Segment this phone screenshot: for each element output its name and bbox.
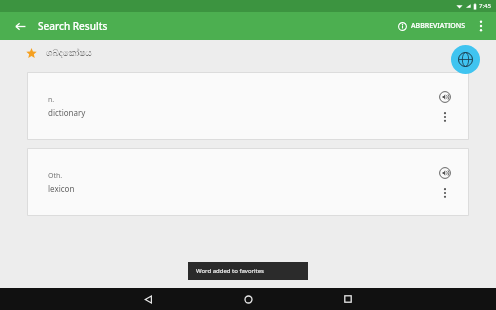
button[interactable]: Home [226, 288, 270, 310]
button[interactable]: Back [10, 16, 30, 36]
button[interactable]: More options [472, 17, 490, 35]
staticText: lexicon [48, 183, 75, 194]
button[interactable]: n. [28, 73, 468, 139]
staticText: ABBREVIATIONS [411, 21, 466, 31]
staticText: n. [48, 95, 55, 105]
staticText: dictionary [48, 107, 86, 118]
button[interactable]: More options [437, 109, 453, 125]
button[interactable]: Oth. [28, 149, 468, 215]
button[interactable]: Pronounce [436, 88, 454, 106]
staticText: ශබ්දකෝෂය [46, 49, 92, 58]
button[interactable]: ABBREVIATIONS [394, 18, 470, 34]
staticText: Oth. [48, 171, 63, 181]
staticText: 7:45 [479, 2, 491, 10]
staticText: Word added to favorites [196, 267, 264, 275]
button[interactable]: More options [437, 185, 453, 201]
button[interactable]: Favorite [22, 44, 40, 62]
button[interactable]: Recent apps [326, 288, 370, 310]
staticText: Search Results [38, 19, 108, 33]
button[interactable]: Translate [451, 45, 480, 74]
button[interactable]: Back [126, 288, 170, 310]
button[interactable]: Pronounce [436, 164, 454, 182]
